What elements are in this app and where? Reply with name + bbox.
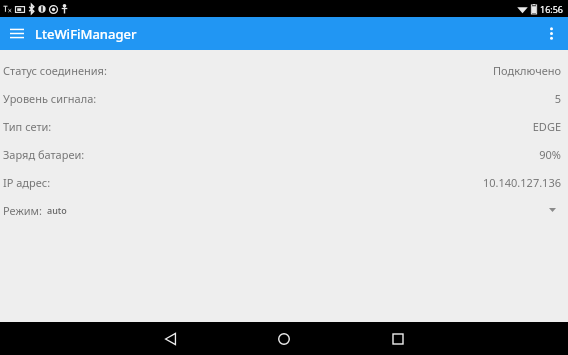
- button[interactable]: Тип сети:: [0, 112, 568, 140]
- staticText: Тип сети:: [3, 119, 52, 134]
- staticText: IP адрес:: [3, 175, 51, 190]
- staticText: 90%: [539, 147, 561, 162]
- button[interactable]: Back: [150, 322, 190, 355]
- button[interactable]: Заряд батареи:: [0, 140, 568, 168]
- staticText: Статус соединения:: [3, 63, 107, 78]
- staticText: auto: [47, 204, 67, 216]
- button[interactable]: Home: [264, 322, 304, 355]
- button[interactable]: Open navigation drawer: [0, 17, 33, 50]
- staticText: 16:56: [540, 3, 564, 15]
- staticText: 5: [554, 91, 561, 106]
- staticText: EDGE: [532, 119, 561, 134]
- button[interactable]: More options: [535, 17, 568, 50]
- button[interactable]: Recent apps: [378, 322, 418, 355]
- button[interactable]: Режим:: [0, 196, 568, 224]
- button[interactable]: Статус соединения:: [0, 56, 568, 84]
- button[interactable]: Уровень сигнала:: [0, 84, 568, 112]
- staticText: 10.140.127.136: [482, 175, 561, 190]
- staticText: Заряд батареи:: [3, 147, 85, 162]
- staticText: Уровень сигнала:: [3, 91, 97, 106]
- staticText: Подключено: [493, 63, 561, 78]
- button[interactable]: IP адрес:: [0, 168, 568, 196]
- staticText: Режим:: [3, 203, 42, 218]
- button[interactable]: Change mode: [543, 201, 561, 219]
- staticText: LteWiFiManager: [35, 25, 137, 43]
